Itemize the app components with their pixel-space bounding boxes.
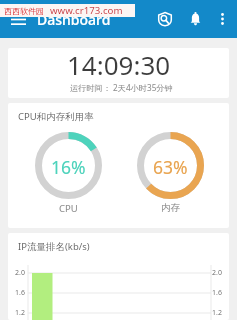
button[interactable]: Open navigation menu — [3, 4, 33, 34]
staticText: 2.0 — [212, 268, 222, 278]
button[interactable]: Search logs — [150, 4, 180, 34]
staticText: 内存 — [161, 202, 180, 214]
staticText: CPU — [59, 202, 78, 215]
staticText: 1.6 — [212, 288, 222, 298]
staticText: IP流量排名(kb/s) — [18, 240, 90, 253]
staticText: 63% — [153, 155, 188, 179]
staticText: 1.6 — [15, 288, 25, 298]
staticText: 西西软件园 — [4, 6, 44, 16]
staticText: 14:09:30 — [67, 48, 171, 82]
staticText: 16% — [51, 155, 86, 179]
staticText: www.cr173.com — [50, 4, 123, 17]
staticText: 1.2 — [15, 308, 25, 318]
button[interactable]: More options — [210, 7, 234, 31]
staticText: CPU和内存利用率 — [18, 110, 94, 123]
staticText: Dashboard — [37, 10, 111, 29]
staticText: 2.0 — [15, 268, 25, 278]
button[interactable]: Notifications — [180, 4, 210, 34]
staticText: 1.2 — [212, 308, 222, 318]
staticText: 运行时间： 2天4小时35分钟 — [70, 82, 173, 93]
